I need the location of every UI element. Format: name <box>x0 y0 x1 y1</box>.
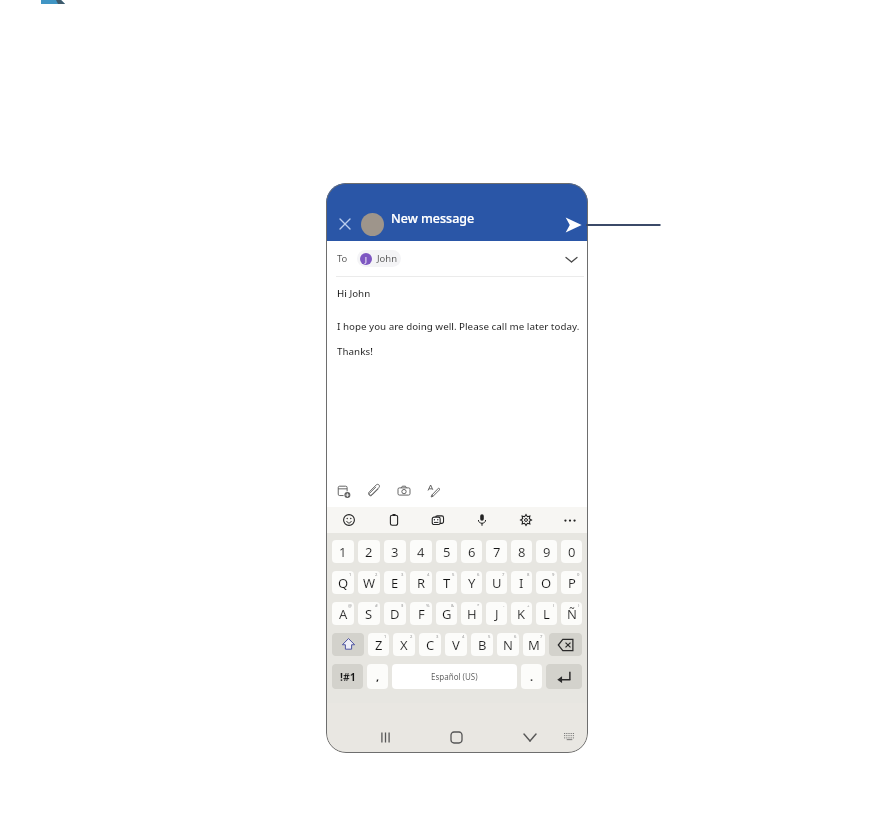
staticText: I <box>519 574 524 592</box>
staticText: F <box>418 605 425 623</box>
button[interactable]: !#1 <box>332 664 363 689</box>
button[interactable]: E <box>384 571 406 594</box>
button[interactable]: Settings <box>515 509 537 531</box>
staticText: 3 <box>391 543 399 561</box>
staticText: L <box>543 605 550 623</box>
button[interactable]: Enter <box>546 664 582 689</box>
staticText: C <box>426 636 435 654</box>
staticText: 3 <box>401 572 404 578</box>
staticText: O <box>541 574 552 592</box>
button[interactable]: A <box>332 602 354 625</box>
button[interactable]: V <box>445 633 467 656</box>
button[interactable]: To <box>326 241 588 276</box>
button[interactable]: Close <box>334 213 356 235</box>
button[interactable]: Backspace <box>549 633 582 656</box>
button[interactable]: P <box>561 571 582 594</box>
staticText: X <box>400 636 408 654</box>
button[interactable]: 5 <box>436 540 457 563</box>
button[interactable]: H <box>461 602 482 625</box>
button[interactable]: Voice input <box>471 509 493 531</box>
button[interactable]: More <box>559 509 581 531</box>
staticText: @ <box>348 603 352 609</box>
button[interactable]: F <box>410 602 432 625</box>
button[interactable]: M <box>523 633 545 656</box>
staticText: 0 <box>568 543 576 561</box>
staticText: G <box>442 605 452 623</box>
button[interactable]: R <box>410 571 432 594</box>
staticText: J <box>495 605 499 623</box>
staticText: 8 <box>527 572 530 578</box>
button[interactable]: U <box>486 571 507 594</box>
button[interactable]: Stickers <box>427 509 449 531</box>
button[interactable]: Shift <box>332 633 364 656</box>
staticText: S <box>365 605 373 623</box>
staticText: 2 <box>365 543 373 561</box>
button[interactable]: Emoji <box>338 509 360 531</box>
staticText: 4 <box>417 543 425 561</box>
staticText: N <box>503 636 513 654</box>
button[interactable]: 9 <box>536 540 557 563</box>
staticText: Español (US) <box>431 671 478 682</box>
button[interactable]: Ñ <box>561 602 582 625</box>
staticText: M <box>528 636 540 654</box>
staticText: 0 <box>577 572 580 578</box>
button[interactable]: Z <box>368 633 389 656</box>
button[interactable]: 8 <box>511 540 532 563</box>
staticText: ) <box>578 603 580 609</box>
button[interactable]: Send <box>564 215 583 234</box>
button[interactable]: Attach file <box>365 482 383 500</box>
button[interactable]: C <box>419 633 441 656</box>
staticText: 1 <box>339 543 347 561</box>
staticText: E <box>391 574 399 592</box>
staticText: W <box>363 574 376 592</box>
staticText: J <box>365 255 367 264</box>
button[interactable]: Keyboard <box>557 725 581 749</box>
button[interactable]: D <box>384 602 406 625</box>
staticText: . <box>530 669 534 684</box>
staticText: # <box>375 603 378 609</box>
button[interactable]: S <box>358 602 380 625</box>
staticText: - <box>503 603 505 609</box>
button[interactable]: L <box>536 602 557 625</box>
staticText: U <box>492 574 502 592</box>
button[interactable]: X <box>393 633 415 656</box>
button[interactable]: O <box>536 571 557 594</box>
button[interactable]: Q <box>332 571 354 594</box>
button[interactable]: Handwriting <box>425 482 443 500</box>
button[interactable]: 2 <box>358 540 380 563</box>
button[interactable]: T <box>436 571 457 594</box>
button[interactable]: , <box>367 664 388 689</box>
staticText: ( <box>553 603 555 609</box>
button[interactable]: G <box>436 602 457 625</box>
button[interactable]: W <box>358 571 380 594</box>
staticText: P <box>568 574 576 592</box>
button[interactable]: Home <box>444 725 468 749</box>
button[interactable]: Hide keyboard <box>518 725 542 749</box>
button[interactable]: B <box>471 633 493 656</box>
staticText: A <box>339 605 348 623</box>
staticText: 5 <box>443 543 451 561</box>
staticText: K <box>517 605 526 623</box>
button[interactable]: Clipboard <box>383 509 405 531</box>
button[interactable]: K <box>511 602 532 625</box>
staticText: 2 <box>375 572 378 578</box>
button[interactable]: 7 <box>486 540 507 563</box>
button[interactable]: 1 <box>332 540 354 563</box>
button[interactable]: Y <box>461 571 482 594</box>
button[interactable]: . <box>521 664 542 689</box>
button[interactable]: Expand recipients <box>562 250 580 268</box>
button[interactable]: Insert image <box>335 482 353 500</box>
button[interactable]: Español (US) <box>392 664 517 689</box>
button[interactable]: 0 <box>561 540 582 563</box>
button[interactable]: 6 <box>461 540 482 563</box>
button[interactable]: Camera <box>395 482 413 500</box>
button[interactable]: 3 <box>384 540 406 563</box>
button[interactable]: Recents <box>373 725 397 749</box>
staticText: % <box>426 603 430 609</box>
button[interactable]: 4 <box>410 540 432 563</box>
button[interactable]: J <box>486 602 507 625</box>
button[interactable]: N <box>497 633 519 656</box>
button[interactable]: I <box>511 571 532 594</box>
staticText: Thanks! <box>337 345 373 358</box>
staticText: * <box>477 603 480 609</box>
